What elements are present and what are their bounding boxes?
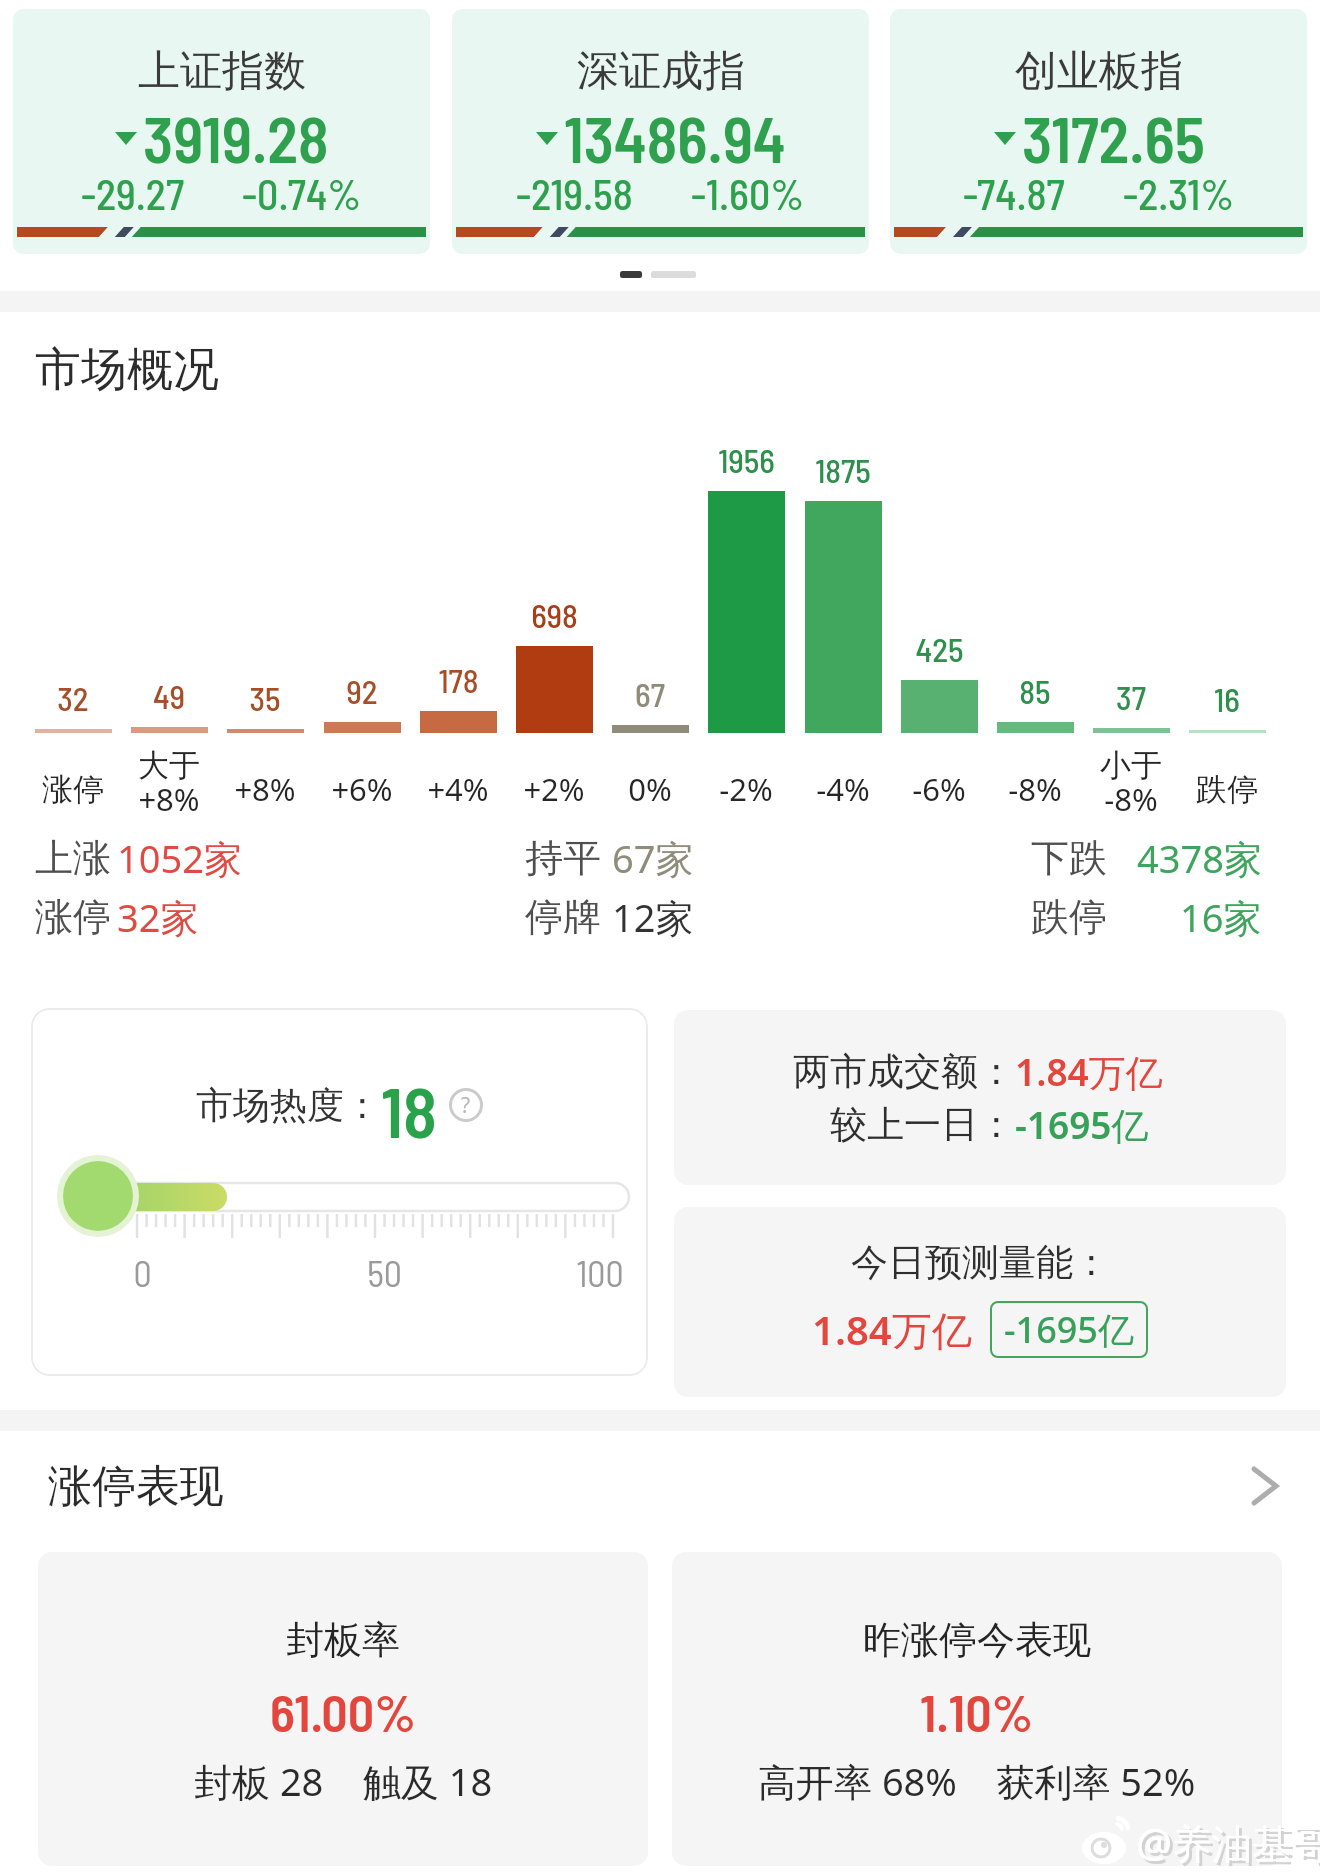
staticText: 178 xyxy=(438,660,479,700)
staticText: 封板率 xyxy=(286,1616,400,1664)
staticText: -74.87 xyxy=(963,168,1065,218)
staticText: 持平 xyxy=(525,834,601,882)
staticText: 涨停 xyxy=(35,893,111,941)
staticText: 92 xyxy=(346,671,378,711)
staticText: @养油基哥 xyxy=(1139,1818,1320,1873)
staticText: 涨停表现 xyxy=(48,1459,224,1514)
staticText: 16家 xyxy=(1180,891,1262,943)
staticText: -2% xyxy=(719,768,773,810)
staticText: 61.00% xyxy=(270,1680,416,1742)
staticText: +6% xyxy=(331,768,393,810)
staticText: +8% xyxy=(234,768,296,810)
staticText: ? xyxy=(461,1091,471,1120)
staticText: 1956 xyxy=(718,440,775,480)
staticText: 50 xyxy=(367,1251,402,1294)
staticText: 18 xyxy=(381,1068,437,1142)
staticText: 35 xyxy=(249,678,281,718)
staticText: 3919.28 xyxy=(143,100,329,176)
staticText: 封板 28 触及 18 xyxy=(194,1755,493,1807)
staticText: 跌停 xyxy=(1196,770,1258,809)
staticText: 32家 xyxy=(117,891,199,943)
staticText: 85 xyxy=(1019,671,1051,711)
staticText: -8% xyxy=(1008,768,1062,810)
staticText: 16 xyxy=(1214,679,1240,719)
staticText: 0% xyxy=(628,768,672,810)
staticText: 67家 xyxy=(612,832,694,884)
staticText: 4378家 xyxy=(1137,832,1262,884)
staticText: 停牌 xyxy=(525,893,601,941)
staticText: 两市成交额： xyxy=(793,1048,1015,1095)
staticText: 市场热度： xyxy=(196,1082,381,1129)
staticText: +2% xyxy=(523,768,585,810)
staticText: -1695亿 xyxy=(1004,1305,1134,1354)
staticText: 市场概况 xyxy=(35,341,219,399)
staticText: 1.84万亿 xyxy=(1015,1046,1163,1097)
staticText: 大于 +8% xyxy=(138,746,200,820)
staticText: 12家 xyxy=(612,891,694,943)
staticText: -29.27 xyxy=(81,168,184,218)
staticText: 32 xyxy=(57,678,89,718)
staticText: -0.74% xyxy=(242,168,362,218)
staticText: -1695亿 xyxy=(1015,1099,1149,1150)
staticText: 昨涨停今表现 xyxy=(863,1616,1091,1664)
staticText: 698 xyxy=(531,595,578,635)
staticText: -1.60% xyxy=(691,168,805,218)
staticText: 1052家 xyxy=(117,832,242,884)
staticText: 1.10% xyxy=(920,1680,1034,1742)
staticText: @养油基哥 xyxy=(1136,1815,1320,1870)
staticText: +4% xyxy=(427,768,489,810)
staticText: 100 xyxy=(576,1251,624,1294)
staticText: 425 xyxy=(915,629,964,669)
staticText: 涨停 xyxy=(42,770,104,809)
staticText: -4% xyxy=(816,768,870,810)
staticText: 上涨 xyxy=(35,834,111,882)
staticText: 深证成指 xyxy=(577,45,745,98)
staticText: 3172.65 xyxy=(1022,100,1205,176)
staticText: 37 xyxy=(1116,677,1146,717)
staticText: 高开率 68% 获利率 52% xyxy=(758,1755,1196,1807)
staticText: 67 xyxy=(635,674,665,714)
staticText: 13486.94 xyxy=(564,100,786,176)
staticText: -219.58 xyxy=(516,168,633,218)
staticText: -2.31% xyxy=(1123,168,1235,218)
staticText: 今日预测量能： xyxy=(851,1239,1110,1286)
staticText: 跌停 xyxy=(1031,893,1107,941)
staticText: -6% xyxy=(912,768,966,810)
staticText: 较上一日： xyxy=(830,1101,1015,1148)
staticText: 下跌 xyxy=(1031,834,1107,882)
staticText: 49 xyxy=(153,676,185,716)
staticText: 1875 xyxy=(815,450,871,490)
staticText: 0 xyxy=(133,1251,152,1294)
staticText: 上证指数 xyxy=(138,45,306,98)
staticText: 创业板指 xyxy=(1015,45,1183,98)
staticText: 小于 -8% xyxy=(1100,746,1162,820)
staticText: 1.84万亿 xyxy=(812,1302,972,1357)
